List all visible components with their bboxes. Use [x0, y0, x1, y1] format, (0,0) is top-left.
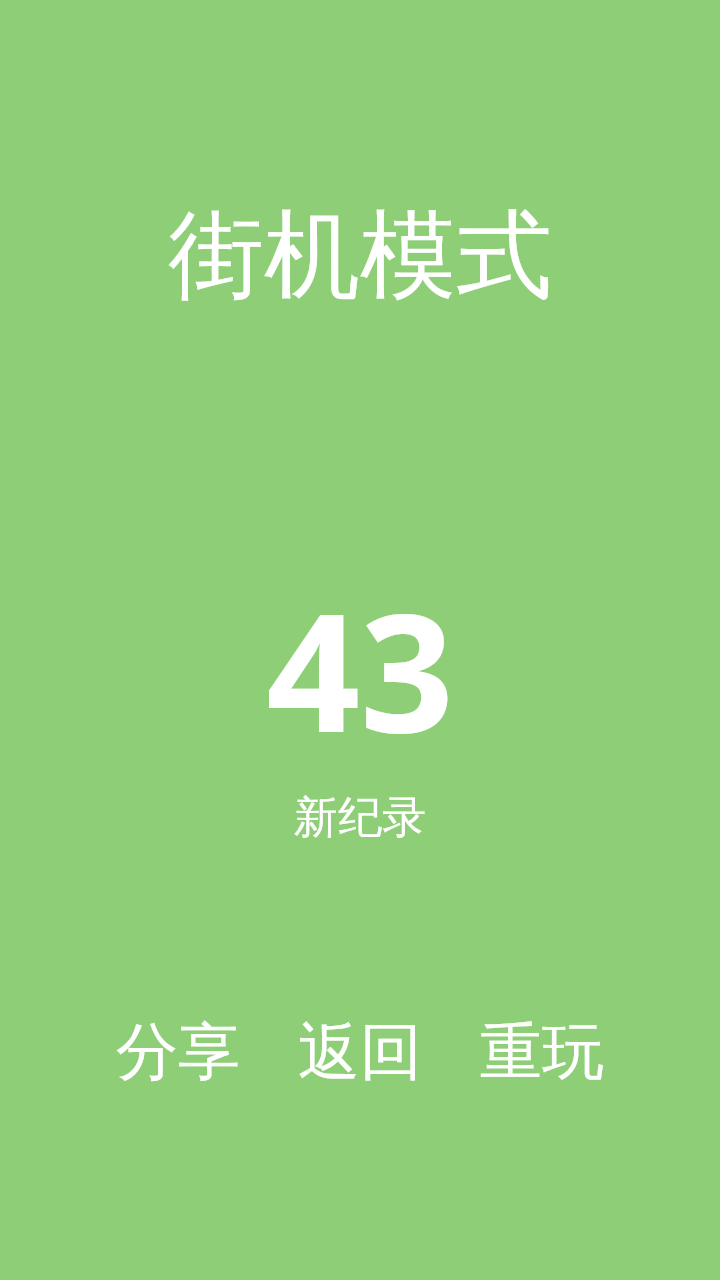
staticText: 重玩	[480, 1013, 604, 1091]
staticText: 街机模式	[168, 196, 552, 317]
staticText: 分享	[116, 1013, 240, 1091]
staticText: 新纪录	[294, 790, 426, 845]
button[interactable]: 返回	[292, 1005, 428, 1099]
button[interactable]: 重玩	[474, 1005, 610, 1099]
staticText: 返回	[298, 1013, 422, 1091]
button[interactable]: 分享	[110, 1005, 246, 1099]
staticText: 43	[266, 557, 454, 780]
